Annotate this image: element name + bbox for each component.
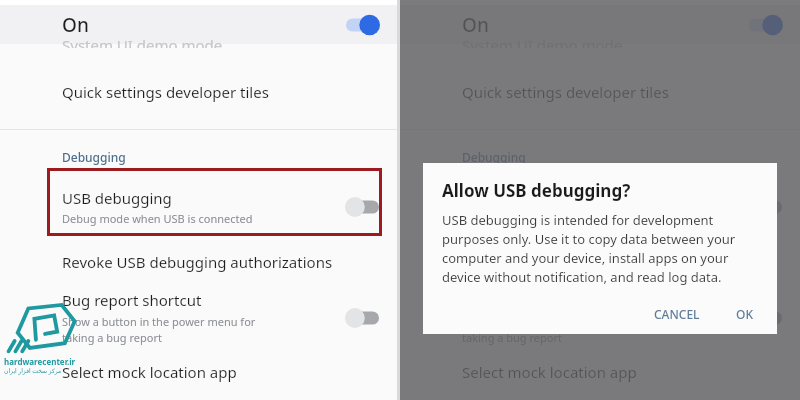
staticText: Show a button in the power menu for taki… [62, 314, 256, 345]
staticText: System UI demo mode [62, 35, 223, 48]
staticText: Show a button in the power menu for taki… [462, 314, 656, 345]
button[interactable]: Toggle, off [748, 307, 782, 329]
staticText: Select mock location app [462, 362, 637, 382]
button[interactable]: Toggle, on [749, 14, 783, 36]
staticText: Quick settings developer tiles [462, 82, 669, 102]
button[interactable]: Toggle, off [345, 307, 379, 329]
button[interactable]: Select mock location app [400, 362, 800, 382]
button[interactable]: Quick settings developer tiles [400, 70, 800, 114]
staticText: مرکز سخت افزار ایران [4, 367, 62, 375]
button[interactable]: Bug report shortcut [0, 290, 397, 345]
staticText: USB debugging is intended for developmen… [442, 211, 763, 286]
staticText: Debugging [462, 149, 526, 165]
staticText: On [62, 12, 89, 38]
staticText: Bug report shortcut [62, 290, 202, 310]
button[interactable]: Toggle, off [345, 196, 379, 218]
staticText: On [462, 12, 489, 38]
button[interactable]: System UI demo mode [0, 44, 397, 57]
staticText: Debugging [62, 149, 126, 165]
button[interactable]: On [400, 5, 800, 44]
button[interactable]: Revoke USB debugging authorizations [0, 245, 397, 279]
staticText: USB debugging [62, 188, 172, 208]
button[interactable]: Revoke USB debugging authorizations [400, 245, 800, 279]
staticText: Allow USB debugging? [442, 179, 631, 202]
button[interactable]: USB debugging [400, 176, 800, 238]
staticText: Debug mode when USB is connected [462, 211, 653, 226]
staticText: Select mock location app [62, 362, 237, 382]
button[interactable]: Quick settings developer tiles [0, 70, 397, 114]
button[interactable]: USB debugging [0, 176, 397, 238]
staticText: OK [736, 306, 753, 322]
staticText: CANCEL [654, 306, 700, 322]
staticText: Revoke USB debugging authorizations [62, 252, 333, 272]
staticText: Debug mode when USB is connected [62, 211, 253, 226]
staticText: hardwarecenter.ir [4, 356, 76, 367]
button[interactable]: Toggle, on [346, 14, 380, 36]
button[interactable]: Select mock location app [0, 362, 397, 382]
staticText: Quick settings developer tiles [62, 82, 269, 102]
button[interactable]: Bug report shortcut [400, 290, 800, 345]
button[interactable]: Toggle, off [748, 196, 782, 218]
staticText: Revoke USB debugging authorizations [462, 252, 733, 272]
button[interactable]: CANCEL [644, 299, 710, 329]
button[interactable]: On [0, 5, 397, 44]
staticText: USB debugging [462, 188, 572, 208]
button[interactable]: OK [726, 299, 763, 329]
